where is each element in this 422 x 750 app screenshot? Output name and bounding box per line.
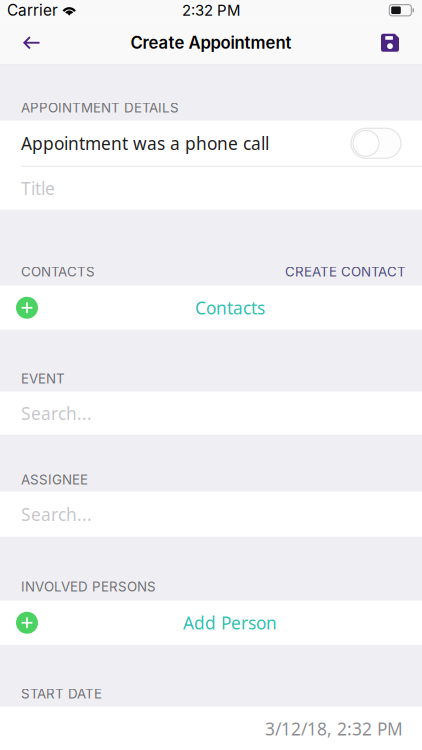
button[interactable]: CREATE CONTACT xyxy=(285,264,406,280)
staticText: CREATE CONTACT xyxy=(285,264,406,280)
button[interactable]: Search... xyxy=(0,392,422,435)
staticText: CONTACTS xyxy=(21,264,95,280)
staticText: 3/12/18, 2:32 PM xyxy=(265,717,403,740)
staticText: APPOINTMENT DETAILS xyxy=(21,100,179,116)
staticText: 2:32 PM xyxy=(182,1,240,19)
staticText: Title xyxy=(21,177,55,200)
staticText: Create Appointment xyxy=(130,33,291,53)
button[interactable]: Title xyxy=(0,167,422,210)
button[interactable]: Back xyxy=(8,21,56,65)
button[interactable]: 3/12/18, 2:32 PM xyxy=(0,707,422,750)
staticText: INVOLVED PERSONS xyxy=(21,579,156,595)
button[interactable]: Search... xyxy=(0,492,422,537)
staticText: Carrier xyxy=(7,1,58,20)
button[interactable]: Save xyxy=(366,21,414,65)
staticText: Add Person xyxy=(183,611,277,634)
staticText: Contacts xyxy=(195,296,265,319)
staticText: Appointment was a phone call xyxy=(21,132,269,155)
staticText: ASSIGNEE xyxy=(21,472,88,488)
button[interactable]: Contacts xyxy=(0,286,422,330)
staticText: START DATE xyxy=(21,686,102,702)
staticText: EVENT xyxy=(21,371,65,387)
button[interactable]: Appointment was a phone call xyxy=(0,121,422,166)
button[interactable]: Add Person xyxy=(0,601,422,645)
staticText: Search... xyxy=(21,503,92,526)
staticText: Search... xyxy=(21,402,92,425)
